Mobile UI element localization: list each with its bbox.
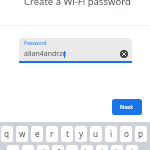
staticText: q [4,128,10,139]
staticText: p [138,128,144,139]
staticText: k [115,147,120,150]
button[interactable]: h [81,145,93,150]
button[interactable]: a [7,145,19,150]
staticText: i [110,128,113,139]
button[interactable]: t [61,126,73,142]
staticText: d [40,147,46,150]
button[interactable]: w [16,126,28,142]
button[interactable]: r [46,126,58,142]
button[interactable]: q [1,126,13,142]
staticText: w [19,128,26,139]
button[interactable]: Password [19,38,132,61]
button[interactable]: e [31,126,43,142]
staticText: r [50,128,54,139]
button[interactable]: l [126,145,138,150]
staticText: l [131,147,134,150]
staticText: e [35,128,40,139]
staticText: f [57,147,60,150]
button[interactable]: g [66,145,78,150]
button[interactable]: u [90,126,102,142]
staticText: y [79,128,84,139]
button[interactable]: d [37,145,49,150]
button[interactable]: k [111,145,123,150]
button[interactable]: Clear text [120,50,128,58]
staticText: t [66,128,69,139]
button[interactable]: y [75,126,87,142]
button[interactable]: o [120,126,132,142]
staticText: o [124,128,129,139]
staticText: Password [24,40,47,47]
staticText: h [84,147,90,150]
button[interactable]: s [22,145,34,150]
button[interactable]: p [135,126,147,142]
button[interactable]: j [96,145,108,150]
staticText: j [101,147,104,150]
staticText: u [93,128,99,139]
staticText: allan4andrze [24,49,67,59]
staticText: Create a Wi-Fi password [24,0,131,8]
button[interactable]: i [105,126,117,142]
button[interactable]: Next [112,99,142,115]
staticText: Next [120,103,134,111]
button[interactable]: f [52,145,64,150]
